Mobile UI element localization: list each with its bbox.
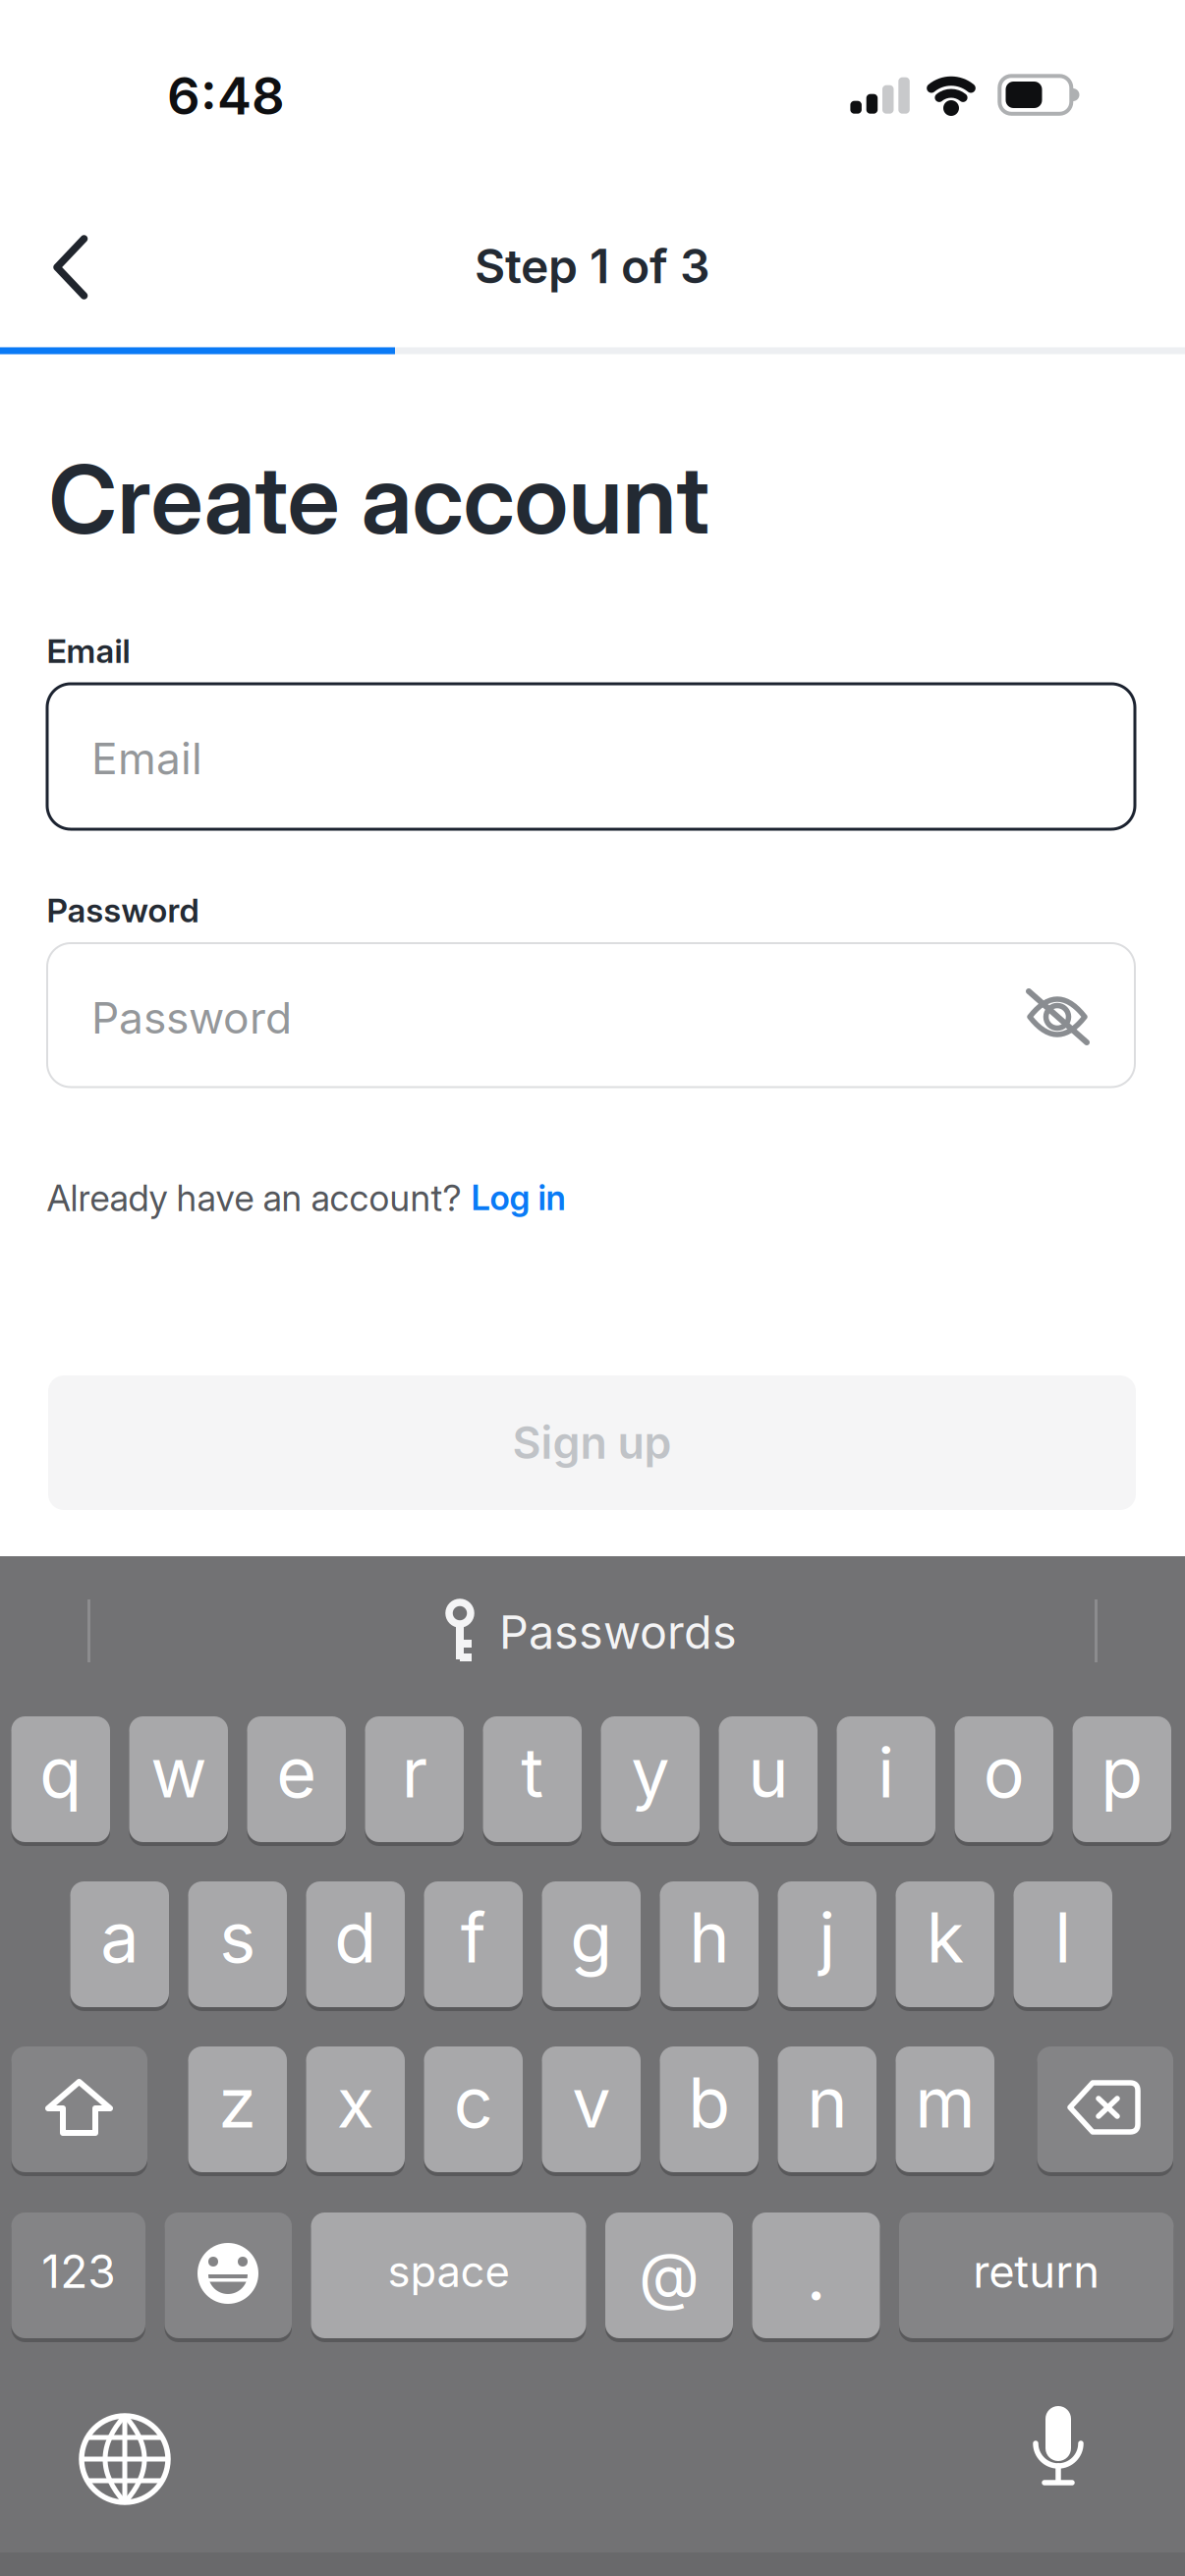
staticText: Sign up <box>512 1416 672 1469</box>
button[interactable]: r <box>365 1714 464 1844</box>
staticText: n <box>807 2061 847 2144</box>
staticText: a <box>100 1896 139 1979</box>
button[interactable]: p <box>1072 1714 1171 1844</box>
staticText: l <box>1055 1896 1071 1979</box>
staticText: Password <box>47 890 199 930</box>
staticText: space <box>388 2246 509 2297</box>
button[interactable]: h <box>660 1879 759 2009</box>
button[interactable]: space <box>311 2211 586 2340</box>
button[interactable]: l <box>1014 1879 1112 2009</box>
staticText: o <box>983 1731 1025 1814</box>
staticText: j <box>819 1896 835 1979</box>
staticText: f <box>461 1896 486 1979</box>
staticText: d <box>334 1896 377 1979</box>
button[interactable]: g <box>542 1879 641 2009</box>
button[interactable]: u <box>719 1714 818 1844</box>
button[interactable]: Shift <box>11 2044 147 2174</box>
staticText: i <box>878 1731 894 1814</box>
button[interactable]: t <box>483 1714 582 1844</box>
button[interactable]: a <box>70 1879 169 2009</box>
button[interactable]: Emoji <box>165 2211 292 2340</box>
staticText: w <box>151 1731 207 1814</box>
button[interactable]: v <box>542 2044 641 2174</box>
staticText: 6:48 <box>167 65 285 127</box>
staticText: Email <box>91 732 202 785</box>
staticText: p <box>1101 1731 1143 1814</box>
staticText: g <box>570 1896 612 1979</box>
button[interactable]: c <box>424 2044 523 2174</box>
staticText: Password <box>91 991 292 1044</box>
button[interactable]: w <box>129 1714 228 1844</box>
button[interactable]: z <box>188 2044 287 2174</box>
staticText: z <box>218 2061 257 2144</box>
button[interactable]: Sign up <box>48 1375 1136 1510</box>
button[interactable]: i <box>837 1714 935 1844</box>
button[interactable]: Back <box>12 208 130 326</box>
button[interactable]: Next keyboard <box>66 2400 184 2518</box>
button[interactable]: e <box>247 1714 346 1844</box>
button[interactable]: k <box>896 1879 994 2009</box>
staticText: e <box>276 1731 317 1814</box>
staticText: t <box>521 1731 544 1814</box>
button[interactable]: f <box>424 1879 523 2009</box>
button[interactable]: o <box>955 1714 1053 1844</box>
staticText: v <box>572 2061 610 2144</box>
staticText: b <box>688 2061 730 2144</box>
button[interactable]: Delete <box>1037 2044 1173 2174</box>
button[interactable]: return <box>899 2211 1174 2340</box>
staticText: return <box>973 2245 1100 2298</box>
staticText: Email <box>47 631 130 671</box>
button[interactable]: n <box>778 2044 876 2174</box>
button[interactable]: Dictation <box>999 2392 1117 2510</box>
button[interactable]: 123 <box>11 2211 145 2340</box>
staticText: x <box>337 2061 374 2144</box>
button[interactable]: Log in <box>471 1177 565 1218</box>
button[interactable]: @ <box>605 2211 733 2340</box>
staticText: Passwords <box>499 1604 737 1660</box>
button[interactable]: s <box>188 1879 287 2009</box>
button[interactable]: q <box>11 1714 110 1844</box>
staticText: Already have an account? <box>47 1176 461 1220</box>
button[interactable]: b <box>660 2044 759 2174</box>
staticText: s <box>219 1896 256 1979</box>
staticText: k <box>926 1896 964 1979</box>
button[interactable]: Passwords <box>444 1600 737 1665</box>
staticText: m <box>915 2061 975 2144</box>
staticText: u <box>748 1731 788 1814</box>
button[interactable]: j <box>778 1879 876 2009</box>
staticText: q <box>40 1731 82 1814</box>
button[interactable]: Show password <box>998 958 1116 1076</box>
staticText: c <box>454 2061 493 2144</box>
button[interactable]: d <box>306 1879 405 2009</box>
button[interactable]: y <box>601 1714 700 1844</box>
staticText: h <box>689 1896 729 1979</box>
button[interactable]: x <box>306 2044 405 2174</box>
staticText: y <box>631 1731 669 1814</box>
button[interactable]: . <box>752 2211 880 2340</box>
staticText: Create account <box>49 442 710 556</box>
staticText: r <box>402 1731 427 1814</box>
button[interactable]: m <box>896 2044 994 2174</box>
staticText: 123 <box>41 2244 115 2299</box>
staticText: @ <box>639 2237 700 2313</box>
staticText: Log in <box>471 1177 565 1218</box>
staticText: Step 1 of 3 <box>475 238 710 295</box>
staticText: . <box>806 2234 826 2317</box>
